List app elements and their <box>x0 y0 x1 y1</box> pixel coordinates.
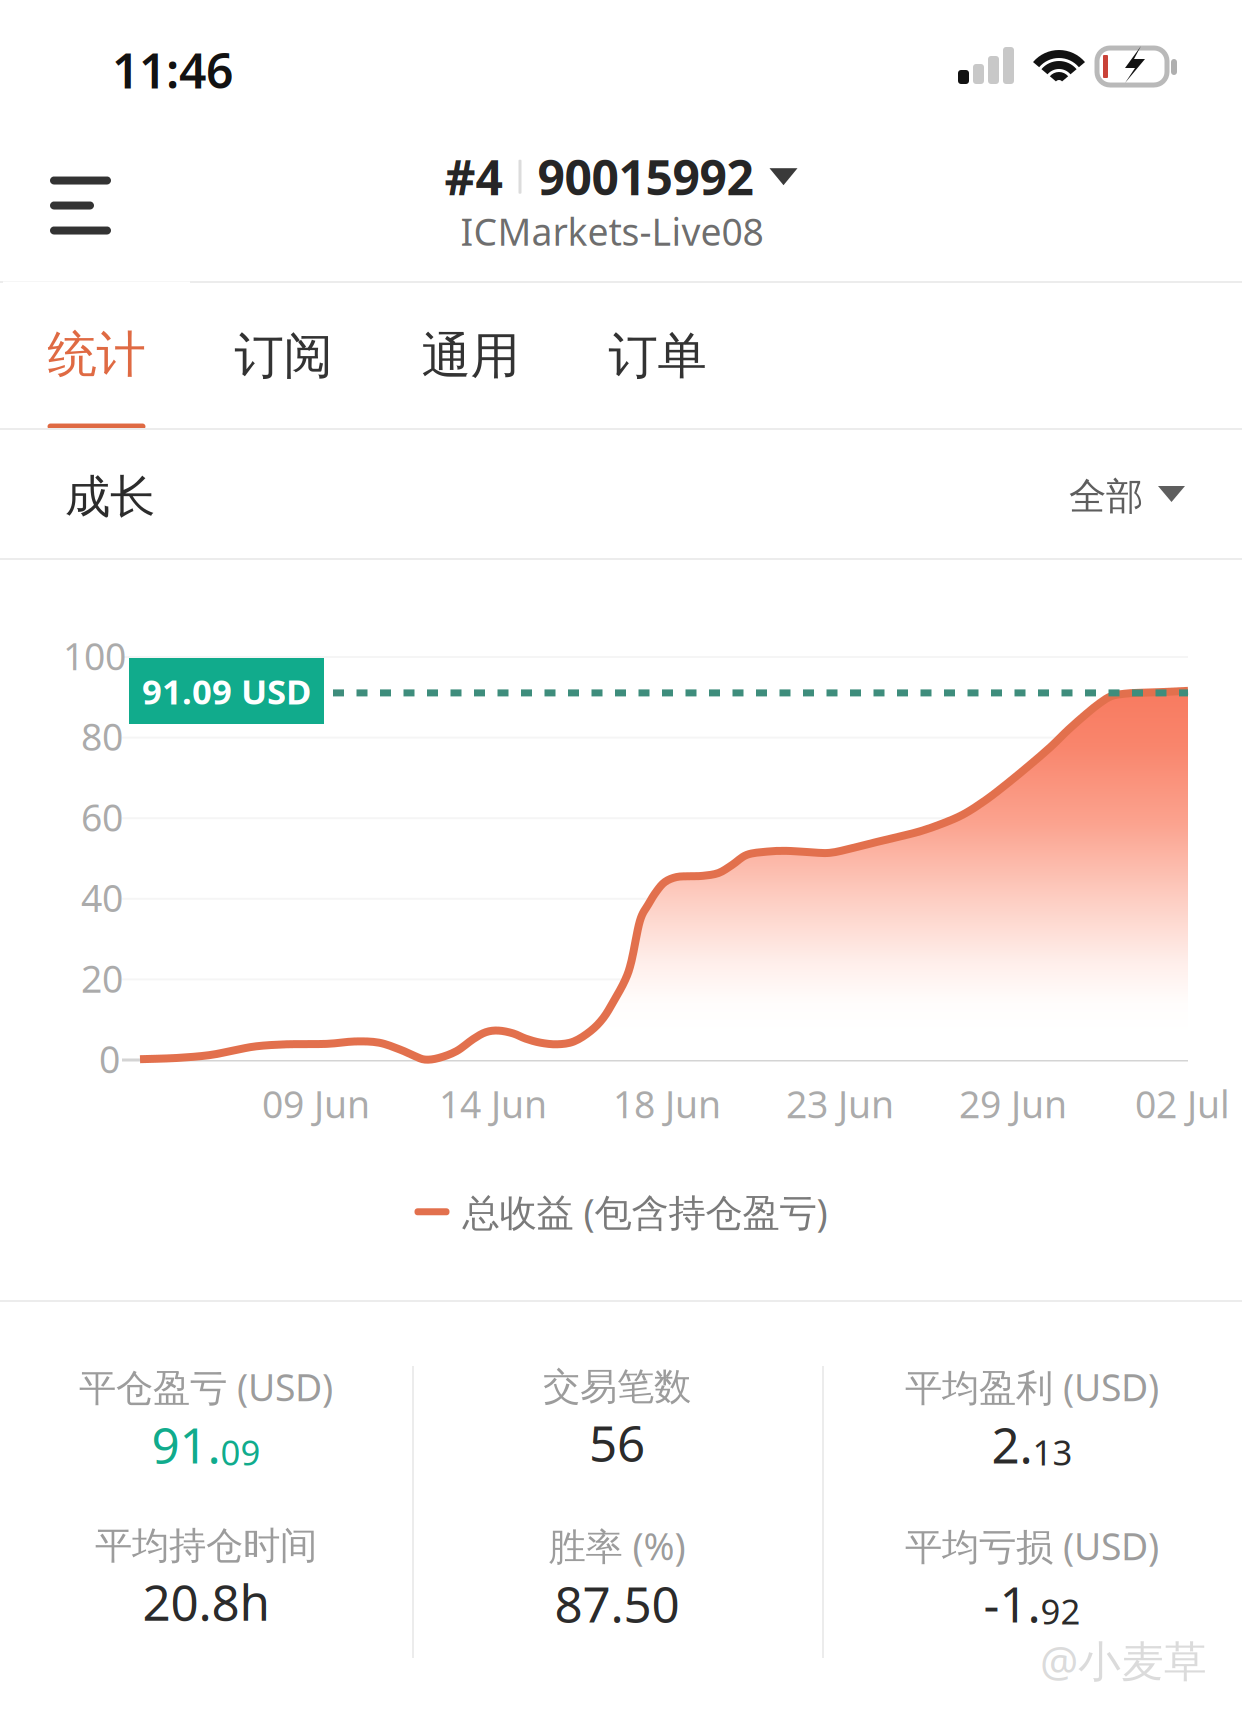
staticText: 胜率 (%) <box>548 1521 685 1571</box>
staticText: 29 Jun <box>959 1079 1067 1129</box>
staticText: 2. <box>991 1412 1032 1477</box>
staticText: 87.50 <box>554 1571 679 1636</box>
staticText: 09 Jun <box>262 1079 370 1129</box>
staticText: 91. <box>151 1412 220 1477</box>
staticText: 20 <box>81 953 123 1003</box>
staticText: ICMarkets-Live08 <box>460 207 763 256</box>
staticText: 订单 <box>608 326 706 386</box>
button[interactable]: Menu <box>0 140 180 270</box>
staticText: 14 Jun <box>439 1079 547 1129</box>
staticText: 90015992 <box>537 145 753 208</box>
staticText: -1. <box>983 1571 1040 1636</box>
staticText: 18 Jun <box>613 1079 721 1129</box>
button[interactable]: 统计 <box>3 283 190 428</box>
staticText: 交易笔数 <box>543 1364 691 1410</box>
staticText: 09 <box>220 1429 260 1475</box>
staticText: 0 <box>99 1034 120 1084</box>
button[interactable]: 订阅 <box>190 283 377 428</box>
staticText: 20.8h <box>142 1569 269 1634</box>
staticText: 100 <box>63 631 126 681</box>
staticText: 通用 <box>421 326 519 386</box>
staticText: #4 <box>444 145 502 208</box>
staticText: 02 Jul <box>1135 1079 1230 1129</box>
staticText: 统计 <box>47 324 145 385</box>
staticText: 全部 <box>1069 474 1143 519</box>
staticText: 56 <box>589 1410 645 1475</box>
staticText: 40 <box>81 873 123 922</box>
staticText: 80 <box>81 712 123 761</box>
staticText: 平均持仓时间 <box>95 1523 317 1569</box>
button[interactable]: #4 <box>444 145 797 266</box>
staticText: @小麦草 <box>1040 1632 1207 1689</box>
staticText: 成长 <box>65 469 155 525</box>
button[interactable]: 通用 <box>377 283 564 428</box>
staticText: 13 <box>1032 1429 1072 1475</box>
staticText: 60 <box>81 792 123 842</box>
staticText: 91.09 USD <box>142 668 311 714</box>
staticText: 总收益 (包含持仓盈亏) <box>462 1187 827 1237</box>
staticText: 订阅 <box>234 326 332 386</box>
staticText: 11:46 <box>112 38 233 102</box>
staticText: 23 Jun <box>786 1079 894 1129</box>
staticText: 平均盈利 (USD) <box>905 1362 1159 1412</box>
staticText: 平均亏损 (USD) <box>905 1521 1159 1571</box>
button[interactable]: 全部 <box>1069 445 1185 543</box>
staticText: 92 <box>1040 1588 1080 1634</box>
button[interactable]: 订单 <box>564 283 751 428</box>
staticText: 平仓盈亏 (USD) <box>79 1362 333 1412</box>
